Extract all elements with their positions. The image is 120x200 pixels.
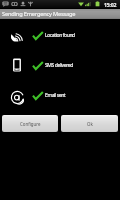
button[interactable]: Ok	[61, 115, 118, 132]
staticText: Ok	[87, 121, 93, 127]
button[interactable]: SMS delivered	[0, 56, 120, 74]
staticText: Location found	[45, 32, 75, 39]
button[interactable]: Email sent	[0, 86, 120, 104]
staticText: 15:02	[104, 1, 117, 8]
button[interactable]: Location found	[0, 26, 120, 44]
staticText: Email sent	[45, 92, 66, 99]
button[interactable]: Configure	[2, 115, 58, 132]
staticText: Configure	[20, 121, 41, 127]
staticText: Sending Emergency Message	[2, 10, 76, 18]
staticText: SMS delivered	[45, 62, 73, 69]
